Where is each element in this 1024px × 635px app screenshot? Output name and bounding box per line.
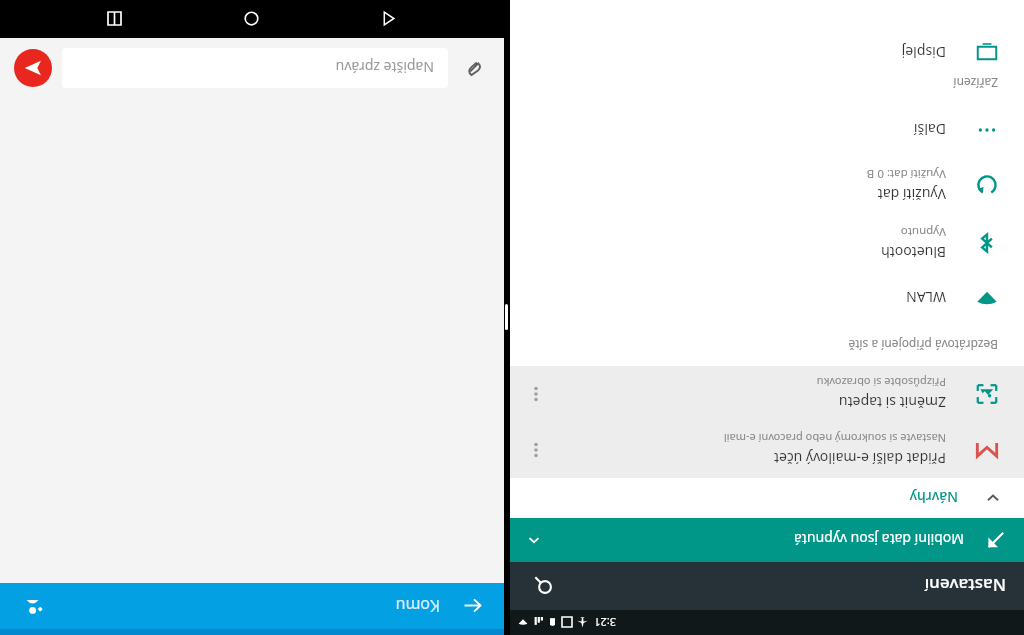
staticText: Přidat další e-mailový účet	[773, 449, 946, 468]
staticText: Nastavení	[924, 574, 1006, 597]
staticText: WLAN	[906, 288, 946, 307]
button[interactable]: Send	[14, 49, 52, 87]
staticText: Napište zprávu	[335, 58, 434, 77]
staticText: Vypnuto	[900, 224, 946, 240]
staticText: Návrhy	[909, 488, 958, 507]
button[interactable]: Attach	[458, 51, 492, 85]
button[interactable]: Add recipient	[16, 589, 50, 623]
button[interactable]: WLAN	[510, 272, 1024, 324]
button[interactable]: Změnit si tapetu	[510, 366, 1024, 422]
staticText: Zařízení	[953, 75, 998, 91]
staticText: Přizpůsobte si obrazovku	[816, 375, 946, 390]
button[interactable]: Recents	[93, 0, 137, 38]
button[interactable]: Využití dat	[510, 156, 1024, 214]
button[interactable]: Další	[510, 104, 1024, 156]
staticText: Mobilní data jsou vypnutá	[793, 530, 964, 549]
staticText: Nastavte si soukromý nebo pracovní e-mai…	[723, 431, 946, 446]
button[interactable]: Search	[528, 570, 560, 602]
button[interactable]: Bluetooth	[510, 214, 1024, 272]
button[interactable]: Přidat další e-mailový účet	[510, 422, 1024, 478]
button[interactable]: Displej	[510, 42, 1024, 62]
button[interactable]: Návrhy	[510, 478, 1024, 518]
staticText: Komu	[395, 595, 440, 617]
staticText: Displej	[901, 43, 946, 62]
staticText: Změnit si tapetu	[838, 393, 946, 412]
button[interactable]: Back	[456, 589, 490, 623]
button[interactable]: More options	[518, 376, 554, 412]
button[interactable]: More options	[518, 432, 554, 468]
button[interactable]: Napište zprávu	[62, 48, 448, 88]
staticText: Využití dat: 0 B	[866, 166, 946, 182]
staticText: Bezdrátová připojení a sítě	[848, 337, 998, 353]
staticText: 3:21	[594, 615, 616, 630]
button[interactable]: Back	[367, 0, 411, 38]
button[interactable]: Home	[230, 0, 274, 38]
staticText: Další	[913, 120, 946, 139]
staticText: Využití dat	[877, 185, 946, 204]
button[interactable]: Mobilní data jsou vypnutá	[510, 518, 1024, 562]
button[interactable]: Nastavení	[510, 562, 1024, 610]
button[interactable]: Back	[0, 583, 504, 629]
staticText: Bluetooth	[881, 243, 946, 262]
